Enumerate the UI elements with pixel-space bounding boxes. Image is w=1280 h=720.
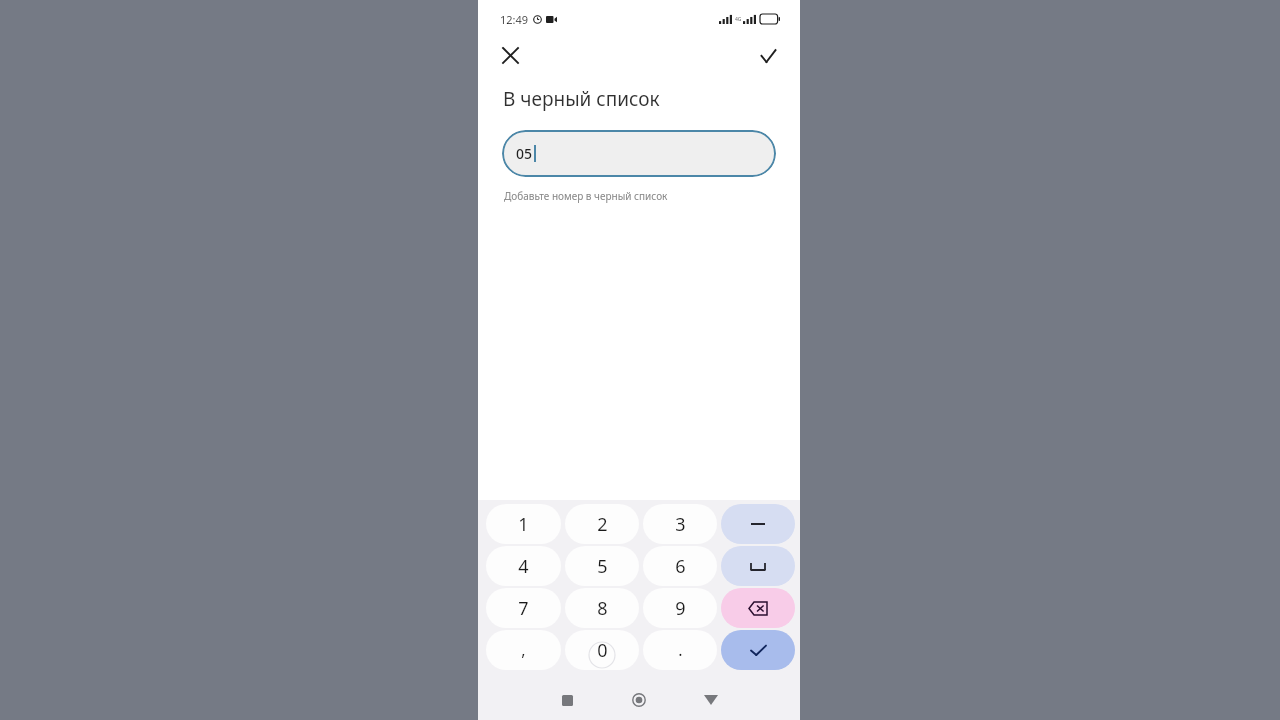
staticText: 5 [597, 554, 608, 579]
button[interactable]: Space [721, 546, 795, 586]
staticText: 4G [735, 16, 742, 23]
button[interactable]: 6 [643, 546, 717, 586]
staticText: 8 [597, 596, 608, 621]
staticText: 7 [518, 596, 529, 621]
button[interactable]: Hide keyboard [694, 683, 728, 717]
staticText: 3 [675, 512, 686, 537]
button[interactable]: Backspace [721, 588, 795, 628]
staticText: 6 [675, 554, 686, 579]
button[interactable]: 3 [643, 504, 717, 544]
button[interactable]: 5 [565, 546, 639, 586]
button[interactable]: 05 [502, 130, 776, 177]
button[interactable]: 4 [486, 546, 561, 586]
button[interactable]: , [486, 630, 561, 670]
button[interactable]: Save [753, 40, 783, 70]
staticText: 05 [516, 144, 533, 163]
staticText: . [678, 639, 683, 661]
button[interactable]: 0 [565, 630, 639, 670]
button[interactable]: Enter [721, 630, 795, 670]
staticText: В черный список [503, 86, 660, 112]
staticText: 4 [518, 554, 529, 579]
button[interactable]: Recents [550, 683, 584, 717]
button[interactable]: Home [622, 683, 656, 717]
staticText: 0 [597, 638, 608, 663]
button[interactable]: 1 [486, 504, 561, 544]
staticText: 1 [518, 512, 529, 537]
staticText: Добавьте номер в черный список [504, 189, 668, 203]
button[interactable]: . [643, 630, 717, 670]
staticText: 9 [675, 596, 686, 621]
button[interactable]: 7 [486, 588, 561, 628]
staticText: , [521, 639, 526, 661]
button[interactable]: 2 [565, 504, 639, 544]
staticText: 12:49 [500, 12, 529, 27]
button[interactable]: Close [495, 40, 525, 70]
button[interactable]: 9 [643, 588, 717, 628]
button[interactable]: Dash [721, 504, 795, 544]
button[interactable]: 8 [565, 588, 639, 628]
staticText: 2 [597, 512, 608, 537]
